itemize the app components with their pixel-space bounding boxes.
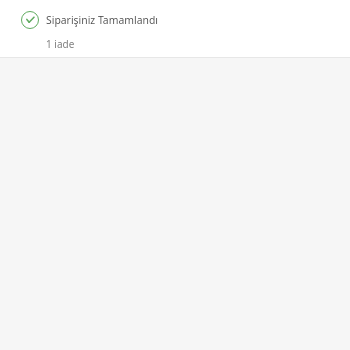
- staticText: 1 iade: [46, 37, 75, 51]
- other: Sipariş tamamlandı: [21, 11, 39, 29]
- button[interactable]: Sipariş tamamlandı: [0, 0, 350, 57]
- staticText: Siparişiniz Tamamlandı: [46, 13, 158, 27]
